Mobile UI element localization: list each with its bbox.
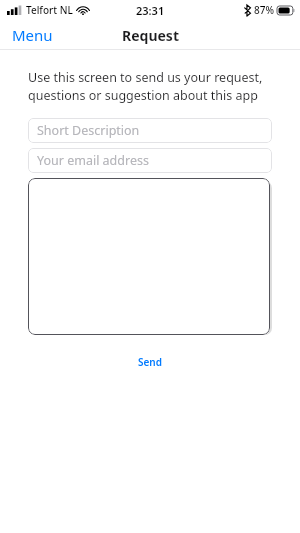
staticText: Telfort NL [26,3,73,17]
button[interactable]: Message body [28,178,270,335]
button[interactable]: Send [28,355,272,369]
staticText: Use this screen to send us your request,… [28,69,272,104]
staticText: Your email address [37,152,149,169]
button[interactable]: Short Description [28,118,272,143]
staticText: 23:31 [136,3,165,18]
staticText: Menu [12,25,53,45]
button[interactable]: Menu [0,21,65,49]
staticText: 87% [254,3,274,17]
staticText: Send [138,355,162,369]
staticText: Request [122,26,179,45]
button[interactable]: Your email address [28,148,272,173]
staticText: Short Description [37,122,140,139]
